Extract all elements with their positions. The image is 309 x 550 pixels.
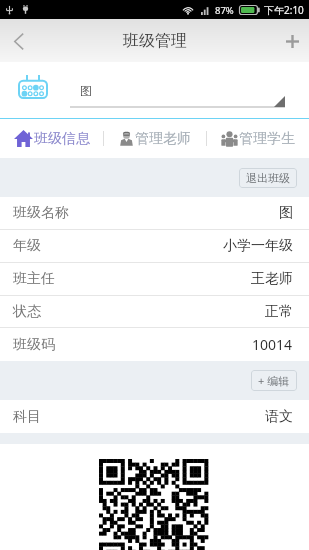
- staticText: 图: [80, 83, 92, 98]
- button[interactable]: 科目: [0, 400, 309, 433]
- button[interactable]: + 编辑: [251, 370, 297, 391]
- staticText: 语文: [265, 408, 293, 426]
- staticText: 班级信息: [34, 130, 90, 148]
- staticText: 管理老师: [135, 130, 191, 148]
- button[interactable]: 班级信息: [0, 119, 103, 158]
- staticText: 班级码: [13, 336, 55, 354]
- staticText: 班主任: [13, 270, 55, 288]
- button[interactable]: 管理学生: [206, 119, 309, 158]
- staticText: 王老师: [251, 270, 293, 288]
- staticText: 班级管理: [123, 31, 187, 51]
- staticText: 年级: [13, 237, 41, 255]
- staticText: 班级名称: [13, 204, 69, 222]
- staticText: 科目: [13, 408, 41, 426]
- button[interactable]: Add: [274, 19, 309, 62]
- staticText: 图: [279, 204, 293, 222]
- button[interactable]: 班级码: [0, 328, 309, 361]
- staticText: 退出班级: [246, 171, 290, 185]
- staticText: 小学一年级: [223, 237, 293, 255]
- staticText: 状态: [13, 303, 41, 321]
- button[interactable]: 年级: [0, 230, 309, 262]
- staticText: 87%: [215, 4, 234, 17]
- button[interactable]: 班主任: [0, 263, 309, 295]
- staticText: 正常: [265, 303, 293, 321]
- staticText: 10014: [252, 335, 293, 354]
- button[interactable]: 管理老师: [103, 119, 206, 158]
- staticText: 管理学生: [239, 130, 295, 148]
- button[interactable]: 图: [70, 82, 285, 107]
- staticText: + 编辑: [258, 373, 290, 388]
- staticText: 下午2:10: [264, 3, 304, 17]
- button[interactable]: 退出班级: [239, 168, 297, 188]
- button[interactable]: 班级名称: [0, 197, 309, 229]
- button[interactable]: Back: [0, 19, 40, 62]
- button[interactable]: 状态: [0, 296, 309, 327]
